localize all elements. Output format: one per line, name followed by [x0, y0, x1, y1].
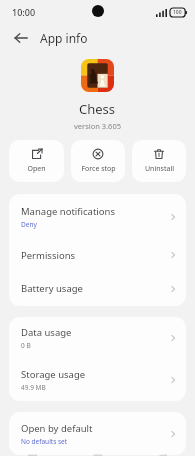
staticText: Uninstall [145, 164, 174, 174]
staticText: Manage notifications [21, 205, 115, 218]
staticText: 10:00 [12, 6, 36, 18]
button[interactable]: Back [130, 455, 195, 456]
staticText: Battery usage [21, 282, 83, 295]
button[interactable]: Open [9, 140, 64, 182]
button[interactable]: Battery usage [9, 271, 186, 306]
button[interactable]: Back [11, 28, 31, 48]
button[interactable]: Data usage [9, 317, 186, 359]
button[interactable]: Permissions [9, 239, 186, 271]
staticText: Deny [21, 220, 37, 229]
button[interactable]: Open by default [9, 412, 186, 455]
button[interactable]: Manage notifications [9, 194, 186, 239]
staticText: App info [40, 30, 88, 46]
staticText: version 3.605 [74, 121, 121, 131]
staticText: Open by default [21, 422, 93, 435]
staticText: Storage usage [21, 368, 86, 381]
button[interactable]: Uninstall [132, 140, 186, 182]
staticText: 49.9 MB [21, 383, 46, 392]
staticText: Open [27, 164, 46, 174]
staticText: 0 B [21, 341, 31, 350]
staticText: No defaults set [21, 437, 68, 446]
staticText: 100 [173, 9, 182, 16]
button[interactable]: Recent apps [0, 455, 65, 456]
staticText: Chess [79, 100, 116, 118]
staticText: Force stop [81, 164, 116, 174]
staticText: Data usage [21, 326, 72, 339]
button[interactable]: Home [65, 455, 130, 456]
staticText: Permissions [21, 249, 76, 262]
button[interactable]: Force stop [71, 140, 125, 182]
button[interactable]: Storage usage [9, 359, 186, 401]
